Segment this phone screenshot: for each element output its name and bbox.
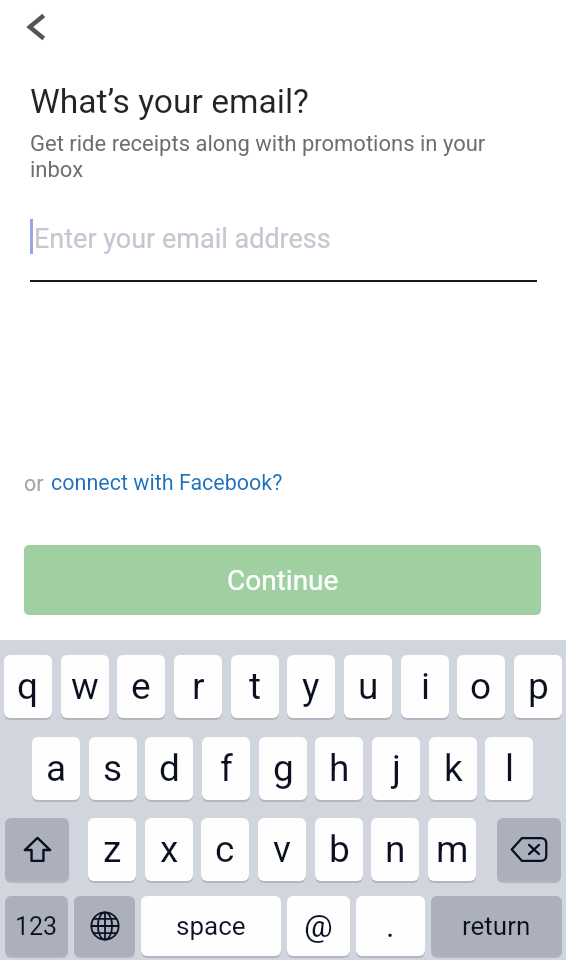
button[interactable]: space bbox=[141, 896, 281, 956]
button[interactable]: s bbox=[89, 737, 137, 800]
staticText: a bbox=[46, 747, 67, 790]
staticText: z bbox=[103, 828, 122, 871]
button[interactable]: g bbox=[259, 737, 307, 800]
staticText: s bbox=[103, 747, 123, 790]
staticText: j bbox=[392, 747, 401, 790]
button[interactable]: p bbox=[514, 655, 562, 718]
staticText: w bbox=[71, 665, 99, 708]
button[interactable]: h bbox=[315, 737, 363, 800]
staticText: l bbox=[505, 747, 514, 790]
staticText: r bbox=[192, 665, 205, 708]
button[interactable]: k bbox=[429, 737, 477, 800]
button[interactable]: n bbox=[371, 818, 419, 881]
staticText: o bbox=[470, 665, 492, 708]
staticText: t bbox=[249, 665, 262, 708]
staticText: What’s your email? bbox=[30, 82, 309, 121]
button[interactable]: u bbox=[344, 655, 392, 718]
staticText: q bbox=[17, 665, 39, 708]
staticText: or bbox=[24, 471, 49, 496]
button[interactable]: f bbox=[202, 737, 250, 800]
button[interactable]: Shift bbox=[5, 818, 69, 881]
button[interactable]: l bbox=[485, 737, 533, 800]
staticText: e bbox=[131, 665, 151, 708]
button[interactable]: v bbox=[258, 818, 306, 881]
button[interactable]: Continue bbox=[24, 545, 541, 615]
button[interactable]: e bbox=[117, 655, 165, 718]
button[interactable]: m bbox=[428, 818, 476, 881]
button[interactable]: d bbox=[145, 737, 193, 800]
staticText: space bbox=[176, 911, 246, 941]
button[interactable]: a bbox=[32, 737, 80, 800]
button[interactable]: i bbox=[401, 655, 449, 718]
button[interactable]: b bbox=[315, 818, 363, 881]
button[interactable]: Backspace bbox=[497, 818, 561, 881]
staticText: @ bbox=[304, 907, 333, 945]
staticText: 123 bbox=[15, 912, 58, 941]
staticText: g bbox=[273, 747, 294, 790]
staticText: . bbox=[386, 907, 395, 945]
staticText: x bbox=[160, 828, 179, 871]
button[interactable]: Enter your email address bbox=[30, 212, 536, 282]
button[interactable]: t bbox=[231, 655, 279, 718]
staticText: n bbox=[385, 828, 406, 871]
staticText: c bbox=[215, 828, 235, 871]
button[interactable]: r bbox=[174, 655, 222, 718]
staticText: d bbox=[159, 747, 180, 790]
staticText: i bbox=[421, 665, 430, 708]
button[interactable]: z bbox=[88, 818, 136, 881]
button[interactable]: return bbox=[431, 896, 562, 956]
button[interactable]: y bbox=[287, 655, 335, 718]
button[interactable]: w bbox=[61, 655, 109, 718]
staticText: f bbox=[220, 747, 233, 790]
button[interactable]: q bbox=[4, 655, 52, 718]
staticText: v bbox=[273, 828, 291, 871]
button[interactable]: j bbox=[372, 737, 420, 800]
staticText: y bbox=[302, 665, 320, 708]
staticText: m bbox=[436, 828, 469, 871]
button[interactable]: @ bbox=[287, 896, 350, 956]
staticText: Enter your email address bbox=[34, 223, 331, 255]
staticText: h bbox=[329, 747, 350, 790]
button[interactable]: . bbox=[356, 896, 425, 956]
staticText: connect with Facebook? bbox=[51, 470, 283, 495]
staticText: return bbox=[462, 911, 531, 941]
staticText: Continue bbox=[227, 564, 339, 597]
button[interactable]: c bbox=[201, 818, 249, 881]
staticText: k bbox=[444, 747, 463, 790]
button[interactable]: connect with Facebook? bbox=[51, 468, 283, 496]
staticText: p bbox=[528, 665, 549, 708]
button[interactable]: x bbox=[145, 818, 193, 881]
button[interactable]: o bbox=[457, 655, 505, 718]
button[interactable]: Change keyboard bbox=[74, 896, 135, 956]
staticText: u bbox=[358, 665, 379, 708]
button[interactable]: Back bbox=[15, 5, 59, 49]
staticText: Get ride receipts along with promotions … bbox=[30, 131, 502, 182]
staticText: b bbox=[329, 828, 350, 871]
button[interactable]: 123 bbox=[5, 896, 68, 956]
